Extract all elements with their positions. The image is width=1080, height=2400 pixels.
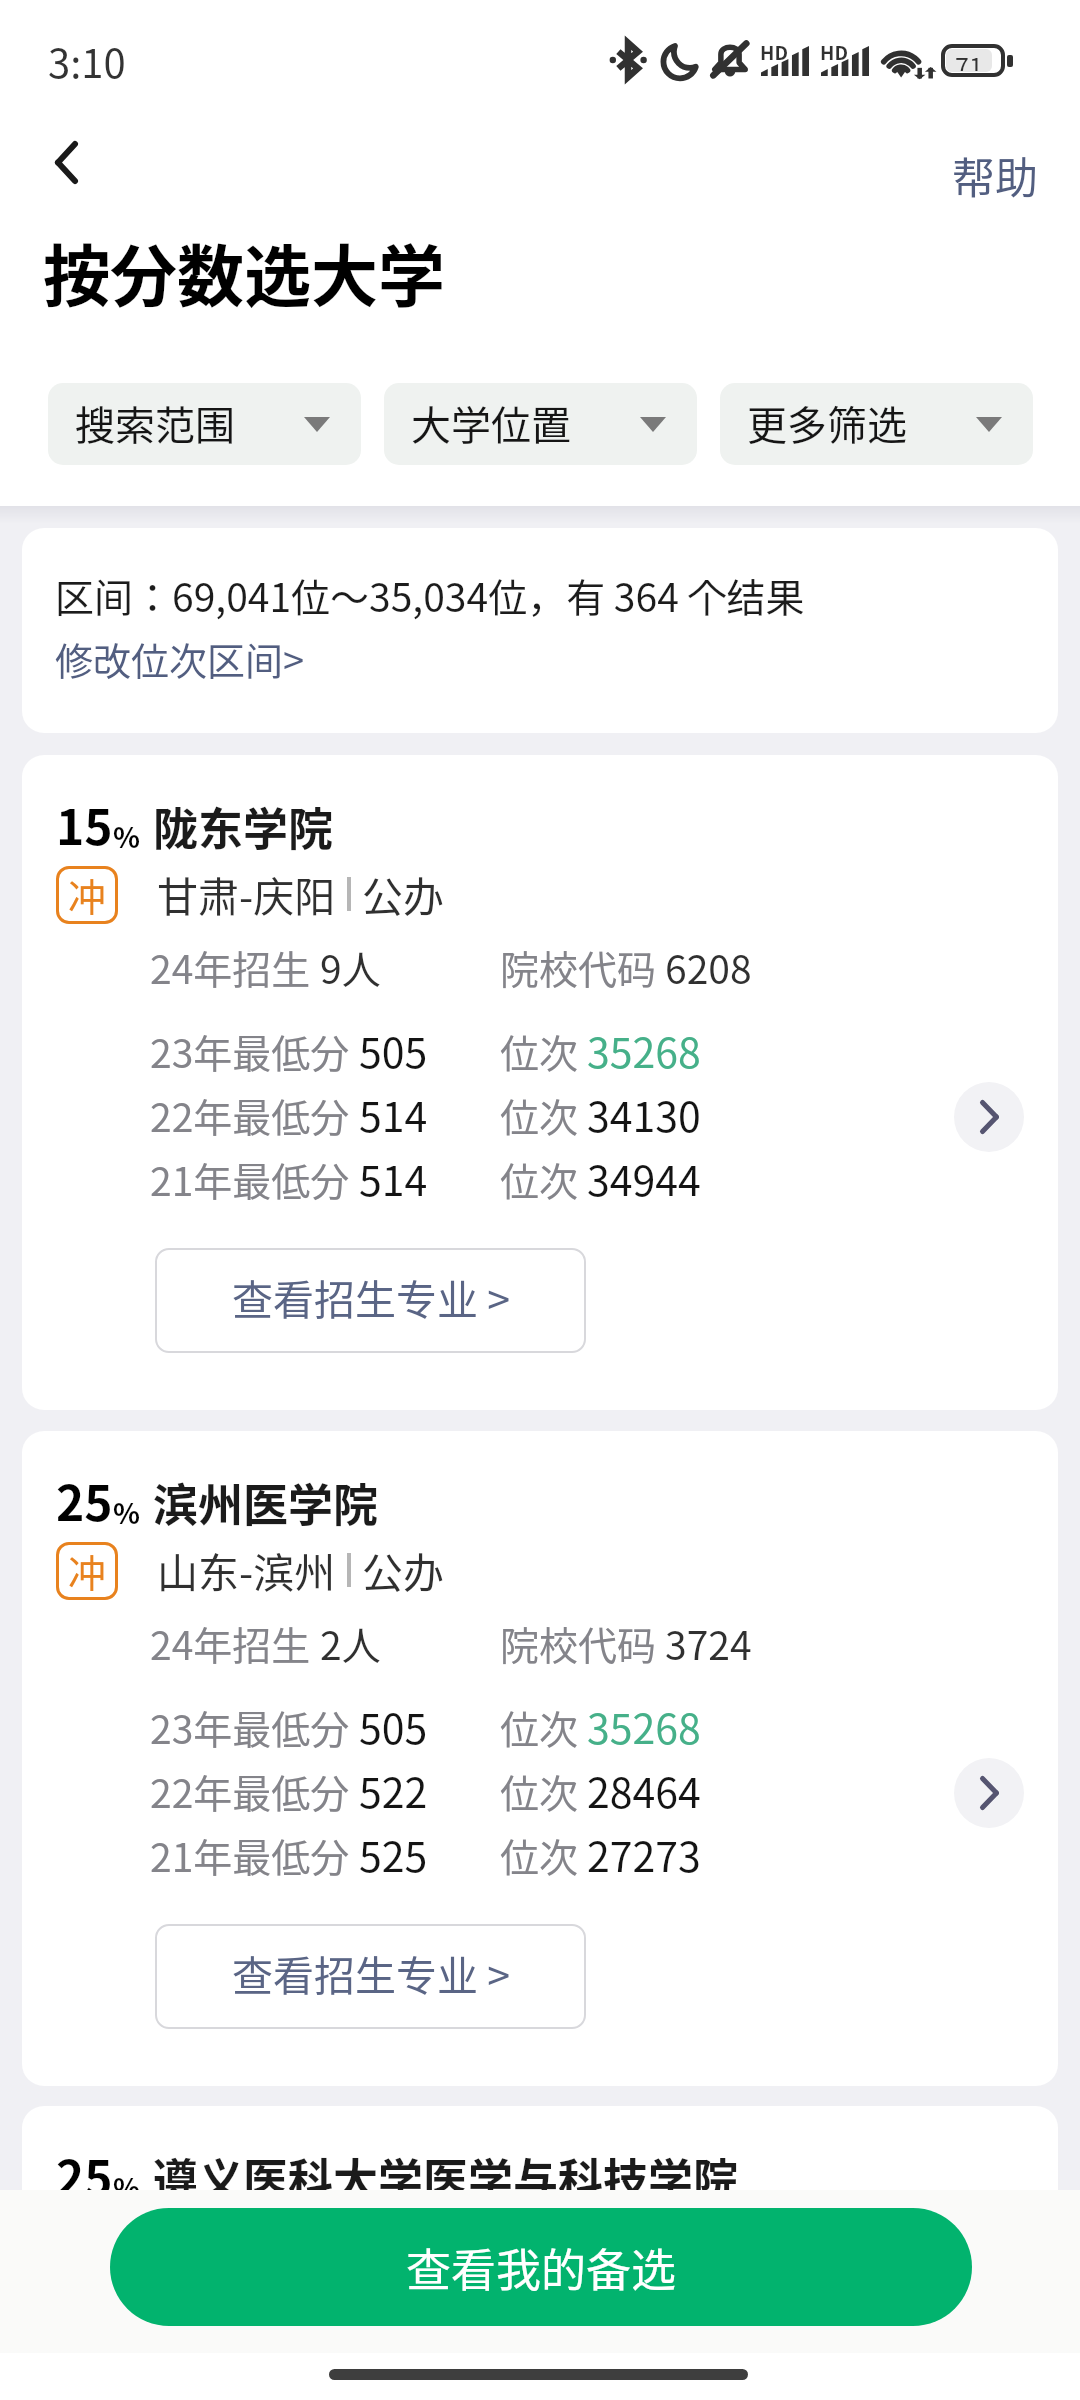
button[interactable]: 查看招生专业 >: [155, 1924, 586, 2029]
staticText: 23年最低分: [150, 1023, 359, 1079]
button[interactable]: 15: [22, 755, 1058, 1410]
staticText: 冲: [68, 867, 107, 922]
staticText: 位次: [500, 1023, 587, 1079]
staticText: 大学位置: [411, 394, 571, 452]
staticText: 25: [56, 1465, 113, 1535]
staticText: 搜索范围: [75, 394, 235, 452]
staticText: 15: [56, 789, 113, 859]
button[interactable]: 25: [22, 1431, 1058, 2086]
button[interactable]: View details: [954, 1082, 1024, 1152]
staticText: 3:10: [48, 32, 126, 90]
staticText: 514: [359, 1148, 428, 1207]
staticText: 位次: [500, 1087, 587, 1143]
staticText: 冲: [68, 1543, 107, 1598]
staticText: 514: [359, 1084, 428, 1143]
staticText: 帮助: [952, 144, 1038, 206]
staticText: 34130: [587, 1084, 701, 1143]
staticText: 35268: [587, 1696, 701, 1755]
staticText: HD: [820, 38, 848, 66]
staticText: 位次: [500, 1827, 587, 1883]
button[interactable]: 帮助: [952, 144, 1038, 206]
staticText: 522: [359, 1760, 428, 1819]
staticText: 公办: [362, 864, 444, 923]
staticText: 27273: [587, 1824, 701, 1883]
staticText: HD: [760, 38, 788, 66]
button[interactable]: 大学位置: [384, 383, 697, 465]
staticText: 9人: [320, 939, 381, 995]
staticText: 22年最低分: [150, 1087, 359, 1143]
staticText: 23年最低分: [150, 1699, 359, 1755]
button[interactable]: 查看我的备选: [110, 2208, 972, 2326]
button[interactable]: 25: [22, 2106, 1058, 2400]
staticText: 35268: [587, 1020, 701, 1079]
staticText: 2人: [320, 1615, 381, 1671]
staticText: 28464: [587, 1760, 701, 1819]
staticText: 21年最低分: [150, 1151, 359, 1207]
staticText: %: [113, 2167, 140, 2208]
staticText: 3724: [665, 1615, 752, 1671]
staticText: 山东-滨州: [157, 1540, 336, 1599]
staticText: 查看招生专业 >: [232, 1267, 510, 1326]
staticText: 21年最低分: [150, 1827, 359, 1883]
staticText: 遵义医科大学医学与科技学院: [153, 2145, 739, 2210]
staticText: 24年招生: [150, 1615, 320, 1671]
staticText: 25: [56, 2140, 113, 2210]
staticText: 505: [359, 1020, 428, 1079]
staticText: 区间：69,041位～35,034位，有 364 个结果: [55, 567, 805, 623]
staticText: 院校代码: [500, 1615, 665, 1671]
button[interactable]: 修改位次区间>: [55, 631, 305, 686]
staticText: 6208: [665, 939, 752, 995]
staticText: 位次: [500, 1699, 587, 1755]
staticText: 按分数选大学: [43, 223, 445, 320]
staticText: 505: [359, 1696, 428, 1755]
staticText: 71: [955, 49, 983, 71]
staticText: 陇东学院: [153, 794, 334, 859]
staticText: 34944: [587, 1148, 701, 1207]
button[interactable]: 查看招生专业 >: [155, 1248, 586, 1353]
staticText: 525: [359, 1824, 428, 1883]
button[interactable]: Back: [24, 120, 108, 204]
staticText: %: [113, 816, 140, 857]
staticText: 查看招生专业 >: [232, 1943, 510, 2002]
staticText: %: [113, 1492, 140, 1533]
staticText: 更多筛选: [747, 394, 907, 452]
staticText: 位次: [500, 1763, 587, 1819]
staticText: 滨州医学院: [153, 1470, 379, 1535]
staticText: 院校代码: [500, 939, 665, 995]
staticText: 修改位次区间>: [55, 631, 305, 686]
button[interactable]: 搜索范围: [48, 383, 361, 465]
staticText: 24年招生: [150, 939, 320, 995]
staticText: 位次: [500, 1151, 587, 1207]
button[interactable]: View details: [954, 1758, 1024, 1828]
staticText: 查看我的备选: [406, 2235, 677, 2300]
staticText: 22年最低分: [150, 1763, 359, 1819]
staticText: 公办: [362, 1540, 444, 1599]
button[interactable]: 更多筛选: [720, 383, 1033, 465]
staticText: 甘肃-庆阳: [157, 864, 336, 923]
